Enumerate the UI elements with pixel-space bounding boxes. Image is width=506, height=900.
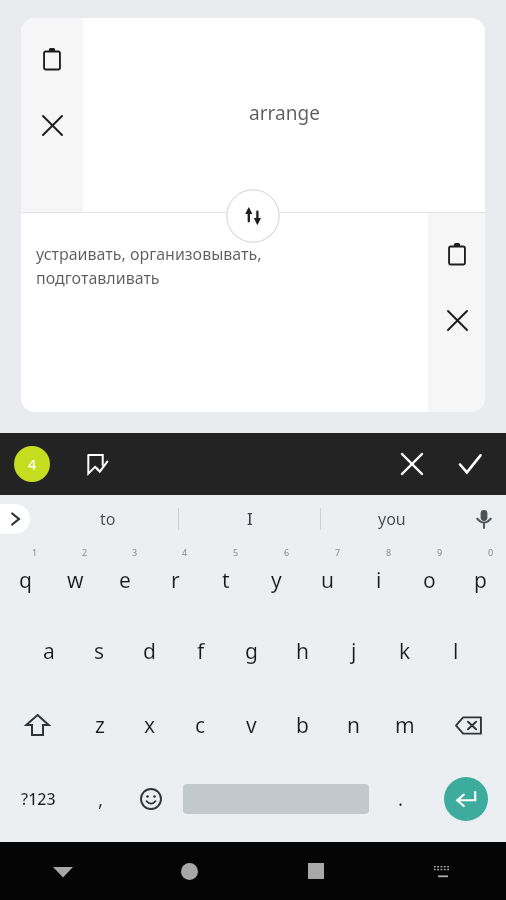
button[interactable]: Shift — [0, 688, 75, 762]
staticText: f — [197, 637, 205, 666]
staticText: 3 — [132, 546, 138, 558]
button[interactable]: 4 — [150, 542, 200, 615]
staticText: r — [171, 566, 180, 595]
button[interactable]: g — [226, 615, 277, 688]
button[interactable]: h — [277, 615, 328, 688]
staticText: , — [98, 786, 104, 812]
staticText: e — [119, 566, 131, 595]
staticText: устраивать, организовывать, подготавлива… — [36, 243, 262, 289]
button[interactable]: 6 — [251, 542, 302, 615]
staticText: l — [453, 637, 459, 666]
button[interactable]: s — [74, 615, 124, 688]
staticText: arrange — [249, 100, 320, 126]
staticText: j — [351, 637, 357, 666]
staticText: z — [95, 711, 105, 740]
staticText: h — [296, 637, 309, 666]
staticText: d — [143, 637, 156, 666]
staticText: a — [43, 637, 55, 666]
staticText: x — [144, 711, 156, 740]
staticText: u — [321, 566, 334, 595]
staticText: m — [395, 711, 415, 740]
button[interactable]: v — [226, 688, 277, 762]
button[interactable]: Back — [0, 842, 126, 900]
button[interactable]: Home — [126, 842, 252, 900]
staticText: 1 — [32, 546, 38, 558]
button[interactable]: Emoji — [126, 762, 176, 836]
button[interactable]: . — [376, 762, 426, 836]
staticText: i — [376, 566, 382, 595]
button[interactable]: Backspace — [430, 688, 506, 762]
button[interactable]: k — [379, 615, 430, 688]
staticText: s — [94, 637, 105, 666]
staticText: n — [347, 711, 360, 740]
staticText: 0 — [488, 546, 494, 558]
button[interactable]: 3 — [100, 542, 150, 615]
button[interactable]: I — [179, 495, 320, 542]
staticText: I — [247, 508, 253, 530]
staticText: 9 — [437, 546, 443, 558]
staticText: t — [222, 566, 230, 595]
button[interactable]: 2 — [50, 542, 100, 615]
staticText: 4 — [28, 455, 37, 474]
button[interactable]: Cancel — [390, 442, 434, 486]
staticText: w — [67, 566, 84, 595]
button[interactable]: m — [379, 688, 430, 762]
staticText: 7 — [335, 546, 341, 558]
button[interactable]: d — [124, 615, 175, 688]
staticText: g — [245, 637, 258, 666]
button[interactable]: n — [328, 688, 379, 762]
staticText: 6 — [284, 546, 290, 558]
button[interactable]: More suggestions — [0, 504, 30, 534]
button[interactable]: Clear source text — [26, 99, 78, 151]
button[interactable]: ?123 — [0, 762, 76, 836]
button[interactable]: , — [76, 762, 126, 836]
staticText: you — [378, 508, 406, 530]
staticText: k — [399, 637, 411, 666]
button[interactable]: Confirm — [448, 442, 492, 486]
button[interactable]: Clear translation — [431, 294, 483, 346]
button[interactable]: b — [277, 688, 328, 762]
button[interactable]: Swap languages — [226, 189, 280, 243]
staticText: ?123 — [21, 788, 56, 810]
button[interactable]: 8 — [353, 542, 404, 615]
button[interactable]: l — [430, 615, 481, 688]
button[interactable]: Save to list — [76, 444, 116, 484]
button[interactable]: you — [321, 495, 462, 542]
button[interactable]: Copy source text — [26, 33, 78, 85]
button[interactable]: Voice input — [462, 497, 506, 541]
button[interactable]: 7 — [302, 542, 353, 615]
button[interactable]: 9 — [404, 542, 455, 615]
staticText: c — [195, 711, 206, 740]
staticText: . — [398, 786, 404, 812]
button[interactable]: to — [38, 495, 178, 542]
staticText: 2 — [82, 546, 88, 558]
staticText: y — [271, 566, 282, 595]
button[interactable]: z — [75, 688, 125, 762]
staticText: v — [246, 711, 257, 740]
staticText: to — [100, 508, 116, 530]
staticText: o — [423, 566, 436, 595]
staticText: b — [296, 711, 309, 740]
button[interactable]: x — [125, 688, 175, 762]
staticText: 5 — [233, 546, 239, 558]
button[interactable]: Recents — [252, 842, 379, 900]
button[interactable]: Copy translation — [431, 228, 483, 280]
staticText: 4 — [182, 546, 188, 558]
button[interactable]: 1 — [0, 542, 50, 615]
button[interactable]: a — [24, 615, 74, 688]
button[interactable]: Enter — [426, 762, 506, 836]
button[interactable]: 0 — [455, 542, 506, 615]
staticText: p — [474, 566, 487, 595]
button[interactable]: 5 — [200, 542, 251, 615]
button[interactable]: Space — [176, 762, 376, 836]
button[interactable]: 4 — [14, 446, 50, 482]
button[interactable]: c — [175, 688, 226, 762]
staticText: 8 — [386, 546, 392, 558]
button[interactable]: j — [328, 615, 379, 688]
button[interactable]: Switch keyboard — [379, 842, 506, 900]
staticText: q — [19, 566, 32, 595]
button[interactable]: f — [175, 615, 226, 688]
